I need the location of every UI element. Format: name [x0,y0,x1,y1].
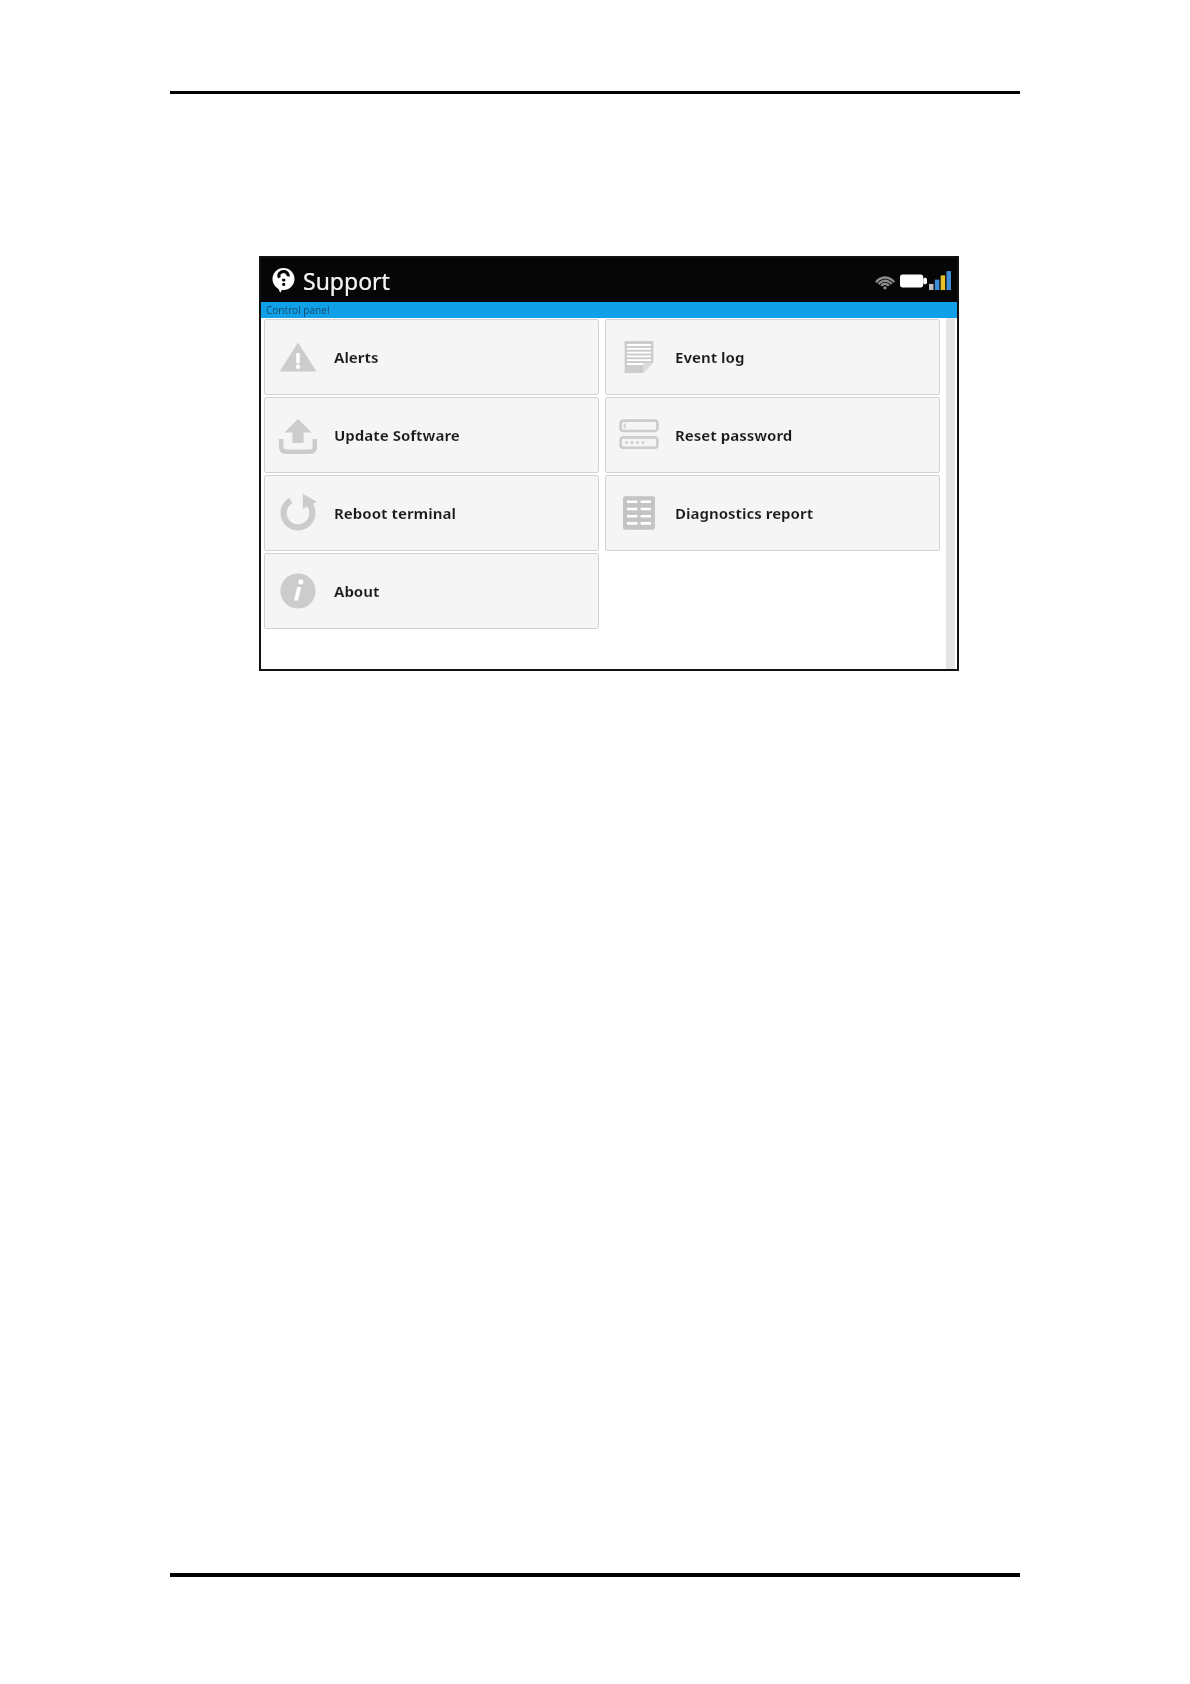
staticText: Alerts [334,347,379,367]
staticText: Reset password [675,425,793,445]
button[interactable]: Event log [605,319,940,395]
button[interactable]: Update Software [264,397,599,473]
button[interactable]: Reboot terminal [264,475,599,551]
staticText: Reboot terminal [334,503,456,523]
button[interactable]: Reset password [605,397,940,473]
staticText: About [334,581,380,601]
staticText: Event log [675,347,745,367]
staticText: Diagnostics report [675,503,814,523]
button[interactable]: Diagnostics report [605,475,940,551]
button[interactable]: About [264,553,599,629]
button[interactable]: Alerts [264,319,599,395]
staticText: Support [303,265,390,296]
staticText: Control panel [266,303,330,317]
staticText: Update Software [334,425,460,445]
